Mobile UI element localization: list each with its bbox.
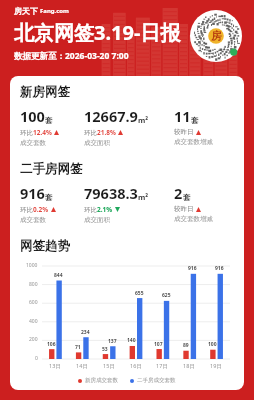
staticText: 100 (20, 106, 45, 126)
staticText: 18日 (183, 362, 195, 370)
staticText: 1000 (26, 262, 38, 269)
staticText: 环比 (20, 206, 33, 214)
staticText: 数据更新至：2026-03-20 7:00 (14, 50, 129, 62)
staticText: 916 (20, 183, 45, 203)
staticText: 107 (154, 341, 163, 348)
staticText: 137 (108, 338, 117, 345)
staticText: 二手房成交套数 (137, 377, 176, 384)
staticText: 房 (211, 29, 222, 43)
staticText: 二手房网签 (20, 161, 83, 177)
staticText: 套 (183, 193, 191, 202)
staticText: 100 (208, 341, 217, 348)
staticText: 916 (215, 265, 224, 272)
staticText: Fang.com (40, 7, 69, 15)
staticText: 79638.3 (84, 183, 138, 203)
staticText: 400 (29, 318, 38, 325)
staticText: 12667.9 (84, 106, 138, 126)
button[interactable]: 房天下 标志 (190, 10, 242, 62)
staticText: 600 (29, 299, 38, 306)
staticText: 环比 (84, 129, 97, 137)
staticText: 成交面积 (84, 216, 110, 224)
button[interactable]: 79638.3 (84, 183, 174, 224)
staticText: 17日 (156, 362, 168, 370)
staticText: 成交套数 (20, 139, 46, 147)
staticText: 环比 (20, 129, 33, 137)
staticText: 14日 (76, 362, 88, 370)
staticText: 15日 (103, 362, 115, 370)
staticText: 11 (174, 106, 191, 126)
staticText: 较昨日 (174, 205, 194, 213)
button[interactable]: 2 (174, 183, 234, 223)
staticText: 2 (174, 183, 183, 203)
button[interactable]: 新房成交套数 (78, 377, 118, 384)
staticText: 800 (29, 281, 38, 288)
button[interactable]: 11 (174, 106, 234, 146)
staticText: 53 (102, 346, 108, 353)
staticText: 655 (135, 290, 144, 297)
staticText: 套 (45, 116, 53, 125)
staticText: 140 (127, 337, 136, 344)
staticText: 16日 (130, 362, 142, 370)
staticText: 套 (191, 116, 199, 125)
button[interactable]: 12667.9 (84, 106, 174, 147)
staticText: 成交套数 (20, 216, 46, 224)
staticText: 套 (45, 193, 53, 202)
staticText: 房天下 (14, 6, 38, 16)
staticText: 625 (162, 292, 171, 299)
staticText: 成交面积 (84, 139, 110, 147)
staticText: 234 (81, 329, 90, 336)
button[interactable]: 916 (20, 183, 84, 224)
staticText: 13日 (49, 362, 61, 370)
staticText: 较昨日 (174, 128, 194, 136)
staticText: 成交套数增减 (174, 215, 213, 223)
staticText: 成交套数增减 (174, 138, 213, 146)
staticText: 12.4% (33, 128, 52, 137)
staticText: m² (138, 192, 149, 202)
button[interactable]: 100 (20, 106, 84, 147)
staticText: 106 (47, 341, 56, 348)
staticText: 21.8% (97, 128, 116, 137)
staticText: 新房网签 (20, 84, 70, 100)
staticText: 71 (75, 344, 81, 351)
staticText: 19日 (210, 362, 222, 370)
staticText: 网签趋势 (20, 238, 70, 254)
staticText: 环比 (84, 206, 97, 214)
staticText: 0 (35, 355, 38, 362)
staticText: m² (138, 115, 149, 125)
staticText: 新房成交套数 (85, 377, 118, 384)
staticText: 2.1% (97, 205, 113, 214)
staticText: 89 (183, 342, 189, 349)
staticText: 0.2% (33, 205, 49, 214)
staticText: 844 (54, 272, 63, 279)
button[interactable]: 二手房成交套数 (130, 377, 176, 384)
staticText: 916 (188, 265, 197, 272)
staticText: 北京网签3.19-日报 (14, 19, 181, 46)
staticText: 200 (29, 336, 38, 343)
